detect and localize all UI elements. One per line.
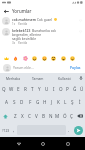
button[interactable]: İ (76, 95, 83, 109)
staticText: D (20, 99, 24, 105)
button[interactable]: Emoji reaction (49, 54, 57, 62)
button[interactable]: ?123 (0, 123, 11, 137)
staticText: G (36, 99, 40, 105)
staticText: P (66, 86, 69, 92)
button[interactable]: G (34, 95, 41, 109)
button[interactable]: Ç (68, 109, 75, 123)
staticText: ?123 (2, 128, 10, 133)
staticText: Merhaba (6, 76, 20, 80)
button[interactable]: cok.muhtesem (0, 17, 85, 26)
staticText: 3s Yanitla (12, 41, 28, 45)
button[interactable]: Z (11, 109, 19, 123)
staticText: X (21, 113, 24, 119)
staticText: L (64, 99, 67, 105)
staticText: N (49, 113, 53, 119)
staticText: Ç (70, 113, 73, 119)
button[interactable]: B (40, 109, 47, 123)
button[interactable]: F (26, 95, 34, 109)
button[interactable]: Merhaba (0, 73, 25, 82)
staticText: Ğ (73, 86, 77, 92)
button[interactable]: M (54, 109, 61, 123)
staticText: İ (79, 99, 81, 105)
button[interactable]: Recent apps (61, 137, 74, 150)
staticText: Yorumlar (12, 8, 32, 14)
button[interactable]: Back (12, 137, 25, 150)
button[interactable]: S (10, 95, 18, 109)
button[interactable]: Shift (0, 109, 11, 123)
button[interactable]: Kullanici (51, 73, 77, 82)
button[interactable]: Home (36, 137, 49, 150)
button[interactable]: Y (36, 82, 43, 95)
staticText: M (55, 113, 60, 119)
staticText: A (5, 99, 8, 105)
staticText: Bunaharika cok (32, 28, 56, 32)
button[interactable]: Emoji reaction (21, 54, 29, 62)
button[interactable]: , (11, 123, 17, 137)
staticText: J (51, 99, 53, 105)
button[interactable]: R (22, 82, 29, 95)
button[interactable]: Ü (78, 82, 85, 95)
button[interactable]: Voice input (77, 73, 85, 82)
button[interactable]: U (43, 82, 50, 95)
button[interactable]: L (62, 95, 69, 109)
button[interactable]: Ö (61, 109, 68, 123)
staticText: Q (2, 86, 6, 92)
button[interactable]: Back (0, 5, 12, 17)
staticText: , (13, 127, 15, 133)
button[interactable]: J (48, 95, 55, 109)
staticText: Ö (63, 113, 67, 119)
button[interactable]: C (26, 109, 33, 123)
staticText: C (28, 113, 31, 119)
button[interactable]: Ş (69, 95, 76, 109)
button[interactable]: H (41, 95, 48, 109)
button[interactable]: X (19, 109, 26, 123)
button[interactable]: I (50, 82, 57, 95)
button[interactable]: Emoji reaction (68, 54, 76, 62)
button[interactable]: . (66, 123, 72, 137)
staticText: I (53, 86, 55, 92)
button[interactable]: Ğ (71, 82, 78, 95)
staticText: B (42, 113, 45, 119)
staticText: S (13, 99, 16, 105)
button[interactable]: Send (74, 126, 83, 135)
button[interactable]: O (57, 82, 64, 95)
button[interactable]: Emoji reaction (40, 54, 48, 62)
button[interactable]: P (64, 82, 71, 95)
button[interactable]: Q (0, 82, 8, 95)
staticText: T (31, 86, 34, 92)
staticText: . (68, 127, 70, 133)
staticText: H (43, 99, 47, 105)
button[interactable]: Emoji reaction (30, 54, 38, 62)
staticText: Kullanici (58, 76, 71, 80)
staticText: V (35, 113, 38, 119)
staticText: saglik kesinlikle (12, 36, 37, 40)
button[interactable]: Paylas (69, 64, 82, 71)
staticText: Z (14, 113, 17, 119)
staticText: kelebek123 (12, 28, 31, 32)
button[interactable]: K (55, 95, 62, 109)
staticText: O (59, 86, 63, 92)
button[interactable]: N (47, 109, 54, 123)
button[interactable]: D (18, 95, 26, 109)
staticText: begendim, ellerine (12, 32, 42, 36)
button[interactable]: Emoji reaction (11, 54, 19, 62)
staticText: Y (38, 86, 41, 92)
staticText: 1s Yanitla (12, 22, 28, 26)
staticText: cok.muhtesem (12, 17, 36, 21)
button[interactable]: E (15, 82, 22, 95)
button[interactable]: W (8, 82, 15, 95)
staticText: U (45, 86, 49, 92)
button[interactable]: Emoji reaction (59, 54, 67, 62)
staticText: Ş (71, 99, 74, 105)
button[interactable]: Tamam (25, 73, 51, 82)
button[interactable]: A (2, 95, 10, 109)
button[interactable]: T (29, 82, 36, 95)
button[interactable]: Emoji reaction (2, 54, 10, 62)
button[interactable]: kelebek123 (0, 28, 85, 45)
button[interactable]: V (33, 109, 40, 123)
button[interactable]: Backspace (75, 109, 85, 123)
staticText: Yorum ekle... (13, 65, 34, 70)
